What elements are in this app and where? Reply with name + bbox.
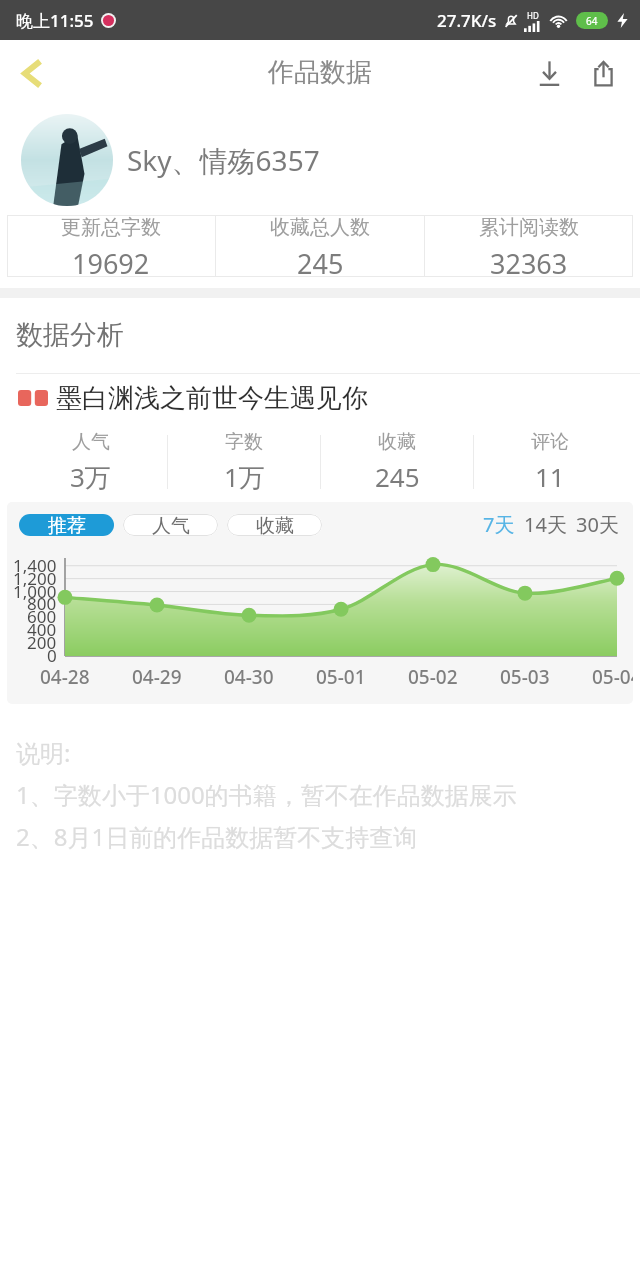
staticText: 评论 bbox=[531, 430, 569, 454]
staticText: 04-30 bbox=[224, 664, 274, 690]
button[interactable]: 更新总字数 bbox=[7, 215, 215, 277]
staticText: 人气 bbox=[72, 430, 110, 454]
button[interactable]: 30天 bbox=[576, 511, 619, 538]
button[interactable]: 墨白渊浅之前世今生遇见你 bbox=[18, 374, 640, 422]
button[interactable]: 7天 bbox=[483, 511, 515, 538]
staticText: 1、字数小于1000的书籍，暂不在作品数据展示 bbox=[16, 778, 517, 811]
button[interactable]: Avatar bbox=[21, 114, 113, 206]
button[interactable]: 字数 bbox=[168, 430, 320, 495]
staticText: 05-01 bbox=[316, 664, 366, 690]
staticText: 05-04 bbox=[592, 664, 633, 690]
staticText: 1,200 bbox=[13, 567, 57, 590]
staticText: 更新总字数 bbox=[61, 215, 161, 240]
staticText: 作品数据 bbox=[268, 56, 372, 89]
staticText: 1,000 bbox=[13, 580, 57, 603]
button[interactable]: 累计阅读数 bbox=[425, 215, 633, 277]
button[interactable]: 收藏 bbox=[321, 430, 473, 494]
staticText: 27.7K/s bbox=[437, 9, 497, 32]
staticText: 600 bbox=[27, 605, 57, 628]
staticText: 400 bbox=[27, 618, 57, 641]
staticText: Sky、情殇6357 bbox=[127, 141, 320, 179]
button[interactable]: Download bbox=[522, 46, 576, 100]
button[interactable]: 收藏总人数 bbox=[216, 215, 424, 277]
staticText: 05-03 bbox=[500, 664, 550, 690]
staticText: 0 bbox=[47, 644, 57, 667]
staticText: 19692 bbox=[72, 245, 150, 277]
staticText: 推荐 bbox=[48, 514, 86, 536]
staticText: 字数 bbox=[225, 430, 263, 454]
staticText: 收藏 bbox=[256, 514, 294, 536]
button[interactable]: 收藏 bbox=[227, 514, 322, 536]
staticText: 200 bbox=[27, 631, 57, 654]
button[interactable]: 评论 bbox=[474, 430, 626, 494]
staticText: 1万 bbox=[224, 459, 265, 495]
staticText: 数据分析 bbox=[16, 318, 124, 352]
staticText: 2、8月1日前的作品数据暂不支持查询 bbox=[16, 820, 418, 853]
staticText: 收藏总人数 bbox=[270, 215, 370, 240]
staticText: 收藏 bbox=[378, 430, 416, 454]
button[interactable]: 人气 bbox=[123, 514, 218, 536]
staticText: 05-02 bbox=[408, 664, 458, 690]
staticText: 800 bbox=[27, 592, 57, 615]
button[interactable]: Back bbox=[0, 41, 64, 105]
staticText: 人气 bbox=[152, 514, 190, 536]
staticText: 04-29 bbox=[132, 664, 182, 690]
button[interactable]: 人气 bbox=[14, 430, 167, 495]
button[interactable]: Share bbox=[576, 46, 630, 100]
staticText: 墨白渊浅之前世今生遇见你 bbox=[56, 382, 368, 415]
button[interactable]: 14天 bbox=[524, 511, 567, 538]
staticText: 1,400 bbox=[13, 554, 57, 577]
staticText: 3万 bbox=[70, 459, 111, 495]
staticText: 245 bbox=[375, 459, 420, 494]
staticText: 说明: bbox=[16, 736, 71, 769]
staticText: 11 bbox=[535, 459, 565, 494]
staticText: HD bbox=[527, 10, 539, 21]
staticText: 晚上11:55 bbox=[16, 9, 94, 32]
staticText: 32363 bbox=[490, 245, 568, 277]
button[interactable]: 推荐 bbox=[19, 514, 114, 536]
staticText: 245 bbox=[297, 245, 344, 277]
staticText: 64 bbox=[586, 14, 598, 28]
staticText: 04-28 bbox=[40, 664, 90, 690]
staticText: 累计阅读数 bbox=[479, 215, 579, 240]
